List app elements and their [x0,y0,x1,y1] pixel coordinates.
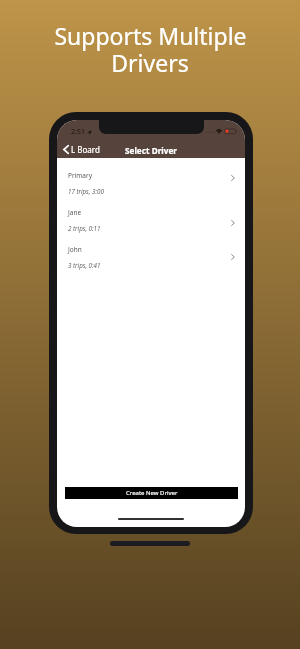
staticText: Primary [68,171,93,180]
staticText: Supports Multiple [54,20,247,51]
button[interactable]: Primary [57,158,245,195]
staticText: 3 trips, 0:41 [68,261,101,269]
staticText: 17 trips, 3:00 [68,187,104,195]
staticText: John [68,245,82,254]
staticText: Drivers [111,47,189,78]
button[interactable]: Jane [57,195,245,232]
staticText: Jane [68,208,82,217]
staticText: 2 trips, 0:11 [68,224,101,232]
staticText: Create New Driver [126,489,178,497]
button[interactable]: L Board [57,142,104,157]
button[interactable]: Create New Driver [65,487,238,499]
staticText: Select Driver [125,145,177,156]
button[interactable]: John [57,232,245,269]
staticText: L Board [71,144,100,155]
staticText: 2:51 [71,127,85,137]
